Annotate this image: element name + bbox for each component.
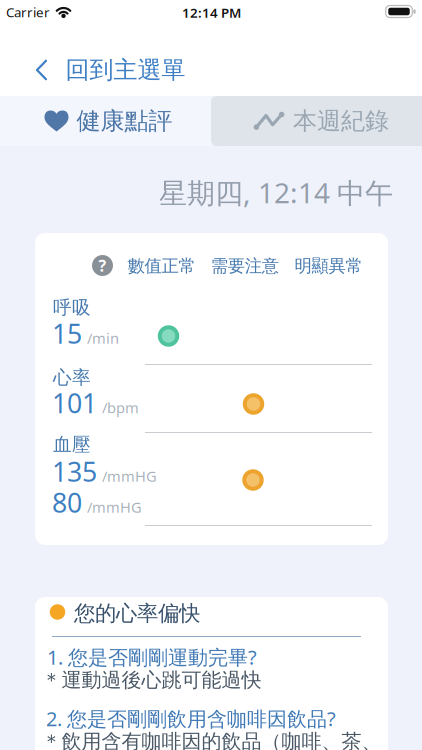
staticText: 血壓 [53,433,91,456]
button[interactable]: 2. 您是否剛剛飲用含咖啡因飲品? [46,705,336,732]
staticText: 明顯異常 [294,255,362,277]
staticText: 12:14 PM [182,4,241,21]
staticText: 80 [52,485,82,520]
button[interactable]: 1. 您是否剛剛運動完畢? [47,644,257,670]
staticText: Carrier [6,3,50,21]
button[interactable]: 說明 [92,255,113,276]
staticText: ＊運動過後心跳可能過快 [41,668,261,692]
staticText: ＊飲用含有咖啡因的飲品（咖啡、茶、 [41,729,381,750]
staticText: /mmHG [102,466,157,486]
staticText: 2. 您是否剛剛飲用含咖啡因飲品? [46,705,336,732]
staticText: 101 [52,385,97,421]
staticText: /min [87,328,119,348]
staticText: 回到主選單 [65,55,185,85]
staticText: 15 [52,316,82,351]
staticText: 心率 [53,366,91,389]
staticText: 星期四, 12:14 中午 [159,174,393,211]
button[interactable]: 回到主選單 [37,55,185,85]
staticText: /mmHG [87,497,142,517]
staticText: ? [98,255,106,276]
staticText: /bpm [102,398,139,417]
button[interactable]: 健康點評 [0,96,211,146]
staticText: 135 [52,454,97,489]
staticText: 1. 您是否剛剛運動完畢? [47,644,257,670]
staticText: 本週紀錄 [293,106,389,136]
staticText: 呼吸 [53,296,91,319]
staticText: 需要注意 [211,255,279,277]
staticText: 健康點評 [76,106,172,136]
staticText: 您的心率偏快 [74,600,200,627]
button[interactable]: 本週紀錄 [211,96,422,146]
staticText: 數值正常 [128,255,196,277]
